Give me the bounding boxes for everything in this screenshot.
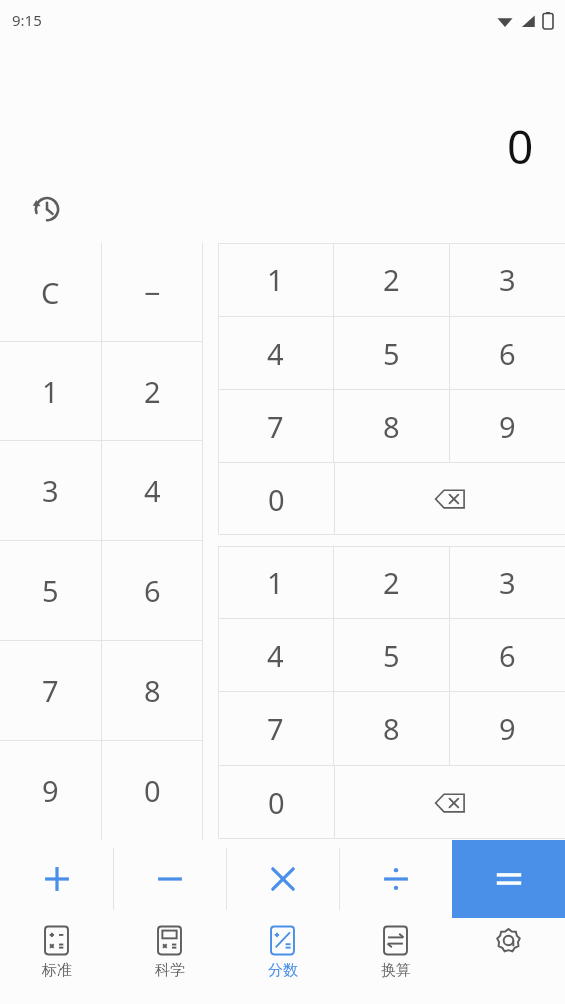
staticText: 科学 — [155, 961, 185, 980]
button[interactable]: 7 — [0, 641, 101, 740]
staticText: − — [144, 273, 161, 312]
button[interactable]: 8 — [333, 390, 449, 462]
staticText: 4 — [267, 636, 284, 675]
button[interactable]: 4 — [101, 441, 203, 540]
staticText: 7 — [267, 407, 284, 446]
button[interactable]: 6 — [449, 619, 565, 691]
staticText: 0 — [507, 115, 534, 178]
button[interactable]: div — [339, 840, 452, 918]
button[interactable]: History — [26, 187, 68, 229]
button[interactable]: More — [452, 918, 565, 997]
button[interactable]: Equals — [452, 840, 565, 918]
staticText: 4 — [267, 334, 284, 373]
button[interactable]: 1 — [218, 243, 333, 316]
staticText: 9 — [499, 407, 516, 446]
button[interactable]: 0 — [218, 463, 334, 535]
staticText: 9 — [42, 771, 59, 810]
button[interactable]: 9 — [449, 692, 565, 765]
staticText: 9:15 — [12, 10, 42, 30]
button[interactable]: Backspace — [334, 766, 565, 839]
button[interactable]: times — [226, 840, 339, 918]
button[interactable]: 换算 — [339, 918, 452, 997]
staticText: 5 — [42, 571, 59, 610]
button[interactable]: 7 — [218, 390, 333, 462]
button[interactable]: 分数 — [226, 918, 339, 997]
button[interactable]: plus — [0, 840, 113, 918]
button[interactable]: 1 — [218, 546, 333, 618]
button[interactable]: 3 — [449, 243, 565, 316]
button[interactable]: 9 — [449, 390, 565, 462]
staticText: 6 — [499, 334, 516, 373]
staticText: 5 — [383, 334, 400, 373]
button[interactable]: 0 — [101, 741, 203, 840]
button[interactable]: 5 — [0, 541, 101, 640]
button[interactable]: 6 — [101, 541, 203, 640]
staticText: 换算 — [381, 961, 411, 980]
staticText: 4 — [144, 471, 161, 510]
button[interactable]: C — [0, 243, 101, 341]
staticText: 2 — [144, 372, 161, 411]
button[interactable]: 3 — [449, 546, 565, 618]
staticText: 2 — [383, 260, 400, 299]
staticText: 0 — [268, 783, 285, 822]
button[interactable]: 2 — [333, 243, 449, 316]
staticText: 8 — [383, 407, 400, 446]
button[interactable]: 8 — [101, 641, 203, 740]
staticText: 3 — [499, 563, 516, 602]
staticText: 1 — [267, 563, 284, 602]
staticText: 8 — [144, 671, 161, 710]
button[interactable]: Backspace — [334, 463, 565, 535]
staticText: 2 — [383, 563, 400, 602]
staticText: 7 — [42, 671, 59, 710]
button[interactable]: 4 — [218, 619, 333, 691]
button[interactable]: 6 — [449, 317, 565, 389]
staticText: 6 — [144, 571, 161, 610]
button[interactable]: 1 — [0, 342, 101, 440]
staticText: 3 — [42, 471, 59, 510]
staticText: 6 — [499, 636, 516, 675]
staticText: 1 — [267, 260, 284, 299]
button[interactable]: 5 — [333, 317, 449, 389]
staticText: 标准 — [42, 961, 72, 980]
staticText: 0 — [144, 771, 161, 810]
staticText: C — [41, 273, 60, 312]
button[interactable]: minus — [113, 840, 226, 918]
button[interactable]: 2 — [101, 342, 203, 440]
button[interactable]: 7 — [218, 692, 333, 765]
staticText: 1 — [42, 372, 59, 411]
staticText: 3 — [499, 260, 516, 299]
button[interactable]: 0 — [218, 766, 334, 839]
button[interactable]: 2 — [333, 546, 449, 618]
button[interactable]: 3 — [0, 441, 101, 540]
button[interactable]: 9 — [0, 741, 101, 840]
button[interactable]: 4 — [218, 317, 333, 389]
button[interactable]: − — [101, 243, 203, 341]
staticText: 8 — [383, 709, 400, 748]
button[interactable]: 标准 — [0, 918, 113, 997]
button[interactable]: 5 — [333, 619, 449, 691]
staticText: 0 — [268, 480, 285, 519]
staticText: 5 — [383, 636, 400, 675]
staticText: 9 — [499, 709, 516, 748]
button[interactable]: 8 — [333, 692, 449, 765]
button[interactable]: 科学 — [113, 918, 226, 997]
staticText: 分数 — [268, 961, 298, 980]
staticText: 7 — [267, 709, 284, 748]
